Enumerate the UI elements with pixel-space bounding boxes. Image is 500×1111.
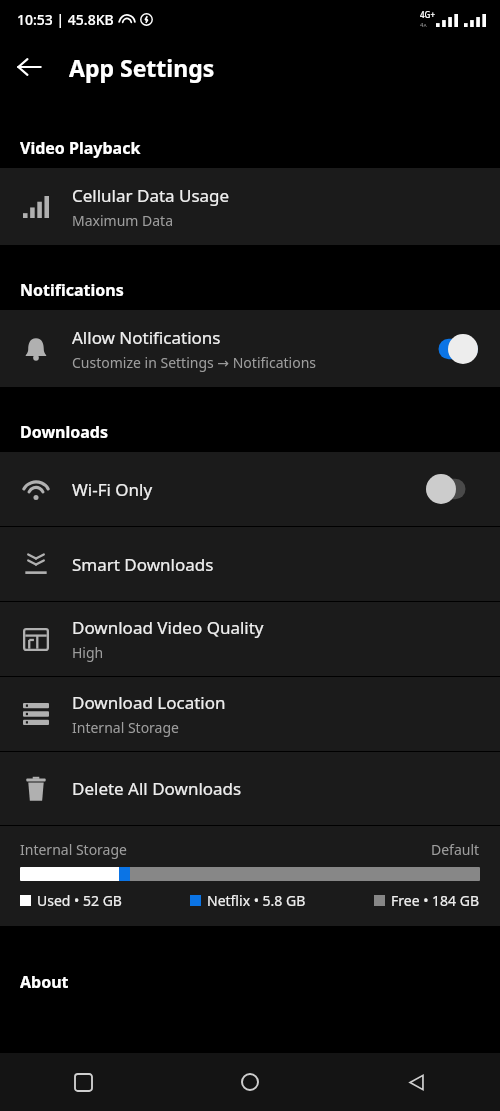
staticText: Default xyxy=(431,840,480,859)
button[interactable]: Toggle on xyxy=(426,334,478,364)
staticText: Allow Notifications xyxy=(72,326,221,349)
staticText: 4ᴀ xyxy=(420,21,427,29)
staticText: 4G+ xyxy=(420,9,435,20)
button[interactable]: Download Video Quality xyxy=(0,602,500,676)
staticText: 10:53 | 45.8KB xyxy=(17,10,114,29)
staticText: Download Video Quality xyxy=(72,616,264,639)
staticText: Delete All Downloads xyxy=(72,777,242,800)
staticText: Smart Downloads xyxy=(72,553,214,576)
staticText: Internal Storage xyxy=(20,840,127,859)
staticText: Free • 184 GB xyxy=(391,891,480,910)
button[interactable]: Allow Notifications xyxy=(0,310,500,387)
staticText: Download Location xyxy=(72,691,226,714)
button[interactable]: Recent apps xyxy=(0,1053,166,1111)
button[interactable]: Back xyxy=(333,1053,500,1111)
button[interactable]: Download Location xyxy=(0,677,500,751)
staticText: Cellular Data Usage xyxy=(72,184,230,207)
staticText: Wi-Fi Only xyxy=(72,478,153,501)
staticText: About xyxy=(20,971,69,993)
staticText: Customize in Settings → Notifications xyxy=(72,353,317,372)
button[interactable]: Toggle off xyxy=(426,474,478,504)
button[interactable]: Cellular Data Usage xyxy=(0,168,500,245)
staticText: Internal Storage xyxy=(72,718,179,737)
staticText: Netflix • 5.8 GB xyxy=(207,891,306,910)
button[interactable]: Delete All Downloads xyxy=(0,752,500,825)
staticText: Used • 52 GB xyxy=(37,891,122,910)
staticText: Video Playback xyxy=(20,137,141,159)
staticText: High xyxy=(72,643,104,662)
staticText: Notifications xyxy=(20,279,124,301)
staticText: Maximum Data xyxy=(72,211,174,230)
button[interactable]: Smart Downloads xyxy=(0,527,500,601)
button[interactable]: Back xyxy=(0,38,58,96)
staticText: Downloads xyxy=(20,421,108,443)
staticText: App Settings xyxy=(69,52,215,83)
button[interactable]: Wi-Fi Only xyxy=(0,452,500,526)
button[interactable]: Home xyxy=(166,1053,333,1111)
